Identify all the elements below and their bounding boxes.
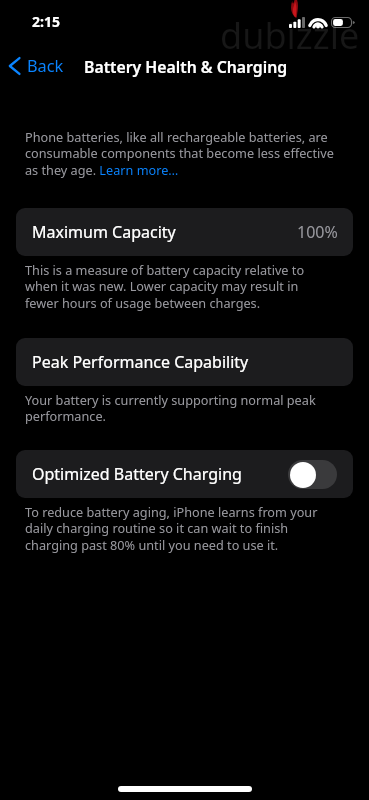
- staticText: Optimized Battery Charging: [32, 463, 242, 485]
- staticText: Phone batteries, like all rechargeable b…: [25, 128, 335, 179]
- staticText: Maximum Capacity: [32, 221, 176, 243]
- button[interactable]: Optimized Battery Charging toggle: [288, 460, 337, 489]
- staticText: To reduce battery aging, iPhone learns f…: [25, 503, 335, 554]
- button[interactable]: Peak Performance Capability: [16, 338, 353, 386]
- staticText: dubizzle: [220, 11, 360, 60]
- button[interactable]: Back: [8, 52, 64, 80]
- staticText: Battery Health & Charging: [84, 56, 288, 78]
- button[interactable]: Maximum Capacity: [16, 208, 353, 256]
- staticText: 2:15: [32, 12, 60, 31]
- button[interactable]: Optimized Battery Charging: [16, 450, 353, 498]
- staticText: This is a measure of battery capacity re…: [25, 261, 335, 312]
- staticText: Your battery is currently supporting nor…: [25, 391, 335, 425]
- staticText: Peak Performance Capability: [32, 351, 249, 373]
- staticText: 100%: [297, 221, 338, 243]
- staticText: Back: [27, 55, 64, 77]
